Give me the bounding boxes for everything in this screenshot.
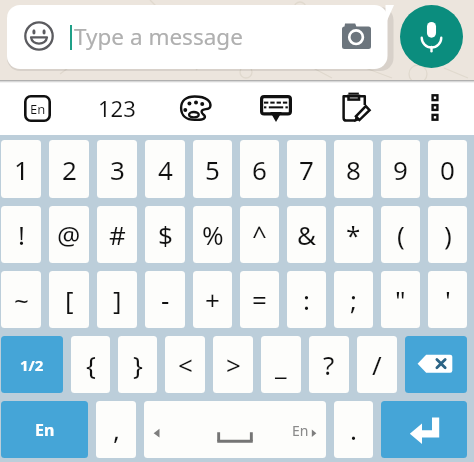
button[interactable]: ? — [309, 336, 349, 393]
staticText: < — [178, 347, 193, 382]
staticText: ? — [323, 347, 335, 382]
staticText: # — [109, 217, 126, 252]
button[interactable]: 2 — [49, 140, 89, 198]
staticText: 5 — [205, 152, 220, 187]
button[interactable]: ( — [381, 206, 420, 263]
button[interactable]: - — [145, 271, 185, 328]
button[interactable]: More options — [427, 94, 443, 121]
staticText: " — [395, 282, 406, 317]
button[interactable]: Next symbol page — [1, 336, 63, 393]
button[interactable]: Input language English — [24, 95, 51, 122]
button[interactable]: } — [118, 336, 157, 393]
staticText: - — [161, 282, 170, 317]
button[interactable]: ; — [334, 271, 373, 328]
button[interactable]: ~ — [1, 271, 41, 328]
button[interactable]: { — [71, 336, 110, 393]
staticText: 6 — [252, 152, 267, 187]
button[interactable]: % — [193, 206, 232, 263]
staticText: } — [133, 347, 143, 382]
staticText: , — [113, 412, 120, 447]
staticText: [ — [65, 282, 74, 317]
button[interactable]: 7 — [287, 140, 326, 198]
button[interactable]: ] — [97, 271, 137, 328]
staticText: 2 — [62, 152, 77, 187]
button[interactable]: 8 — [334, 140, 373, 198]
button[interactable]: _ — [261, 336, 301, 393]
staticText: 4 — [158, 152, 173, 187]
staticText: / — [372, 347, 382, 382]
button[interactable]: Backspace — [405, 336, 467, 393]
button[interactable]: 5 — [193, 140, 232, 198]
staticText: ' — [445, 282, 451, 317]
staticText: ! — [18, 217, 25, 252]
button[interactable]: 9 — [381, 140, 420, 198]
staticText: En — [35, 419, 55, 441]
button[interactable]: . — [334, 401, 373, 458]
button[interactable]: ) — [428, 206, 467, 263]
button[interactable]: Record voice message — [400, 5, 463, 68]
button[interactable]: Theme — [180, 95, 212, 121]
button[interactable]: + — [193, 271, 232, 328]
staticText: 7 — [299, 152, 314, 187]
button[interactable]: Type a message — [74, 21, 243, 52]
staticText: ( — [397, 217, 405, 252]
staticText: 3 — [110, 152, 125, 187]
staticText: ; — [350, 282, 357, 317]
staticText: En — [30, 100, 46, 118]
staticText: 9 — [393, 152, 408, 187]
button[interactable]: 123 — [96, 89, 138, 127]
button[interactable]: $ — [145, 206, 185, 263]
staticText: { — [86, 347, 96, 382]
button[interactable]: * — [334, 206, 373, 263]
button[interactable]: Keyboard modes — [260, 95, 292, 122]
staticText: 1/2 — [20, 355, 44, 375]
staticText: & — [297, 217, 317, 252]
button[interactable]: , — [96, 401, 136, 458]
button[interactable]: Camera — [342, 23, 371, 49]
button[interactable]: = — [240, 271, 279, 328]
staticText: . — [350, 412, 357, 447]
button[interactable]: Switch language — [1, 401, 88, 458]
button[interactable]: " — [381, 271, 420, 328]
staticText: ] — [113, 282, 122, 317]
button[interactable]: < — [165, 336, 205, 393]
button[interactable]: Clipboard — [341, 92, 370, 123]
button[interactable]: @ — [49, 206, 89, 263]
button[interactable]: Enter — [381, 401, 467, 458]
button[interactable]: / — [357, 336, 397, 393]
staticText: * — [346, 217, 361, 252]
staticText: _ — [275, 347, 287, 382]
button[interactable]: 6 — [240, 140, 279, 198]
staticText: ~ — [14, 282, 29, 317]
staticText: > — [226, 347, 241, 382]
staticText: ) — [444, 217, 452, 252]
staticText: @ — [57, 217, 81, 252]
button[interactable]: > — [213, 336, 253, 393]
button[interactable]: Space — [144, 401, 326, 458]
button[interactable]: 4 — [145, 140, 185, 198]
button[interactable]: : — [287, 271, 326, 328]
staticText: En — [292, 421, 309, 440]
button[interactable]: 0 — [428, 140, 467, 198]
button[interactable]: 3 — [97, 140, 137, 198]
staticText: % — [202, 217, 224, 252]
button[interactable]: [ — [49, 271, 89, 328]
staticText: 123 — [98, 93, 136, 123]
staticText: = — [252, 282, 267, 317]
staticText: 1 — [14, 152, 29, 187]
button[interactable]: ! — [1, 206, 41, 263]
staticText: 8 — [346, 152, 361, 187]
staticText: 0 — [440, 152, 455, 187]
button[interactable]: Emoji — [24, 21, 54, 51]
button[interactable]: # — [97, 206, 137, 263]
staticText: $ — [158, 217, 173, 252]
button[interactable]: ' — [428, 271, 467, 328]
staticText: + — [205, 282, 220, 317]
button[interactable]: 1 — [1, 140, 41, 198]
staticText: ^ — [252, 217, 267, 252]
button[interactable]: & — [287, 206, 326, 263]
button[interactable]: ^ — [240, 206, 279, 263]
staticText: : — [303, 282, 310, 317]
